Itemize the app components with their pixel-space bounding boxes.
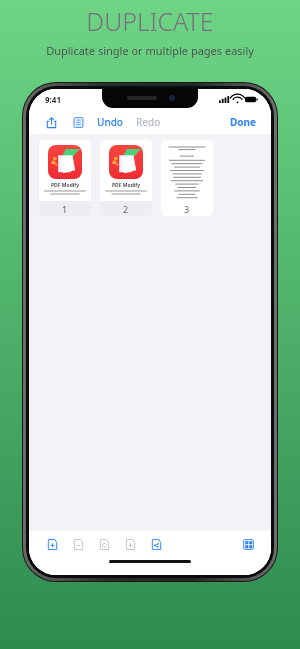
button[interactable]: 3 (161, 140, 213, 216)
button[interactable]: Delete page (68, 534, 88, 554)
staticText: Redo (136, 115, 161, 129)
button[interactable]: Done (228, 113, 259, 131)
button[interactable]: PDF Modify (100, 140, 152, 216)
button[interactable]: Rotate page (94, 534, 114, 554)
button[interactable]: Duplicate page (120, 534, 140, 554)
button[interactable]: Pages (68, 112, 88, 132)
button[interactable]: Grid view (238, 534, 258, 554)
button[interactable]: Share page (146, 534, 166, 554)
staticText: PDF Modify (51, 182, 80, 189)
staticText: Undo (97, 115, 123, 129)
staticText: Duplicate single or multiple pages easil… (46, 43, 254, 58)
button[interactable]: Undo (95, 113, 125, 131)
staticText: 1 (62, 203, 68, 215)
staticText: DUPLICATE (86, 4, 214, 38)
button[interactable]: Redo (134, 113, 163, 131)
button[interactable]: Add page (42, 534, 62, 554)
staticText: PDF Modify (112, 182, 141, 189)
staticText: Done (230, 115, 257, 129)
button[interactable]: PDF Modify (39, 140, 91, 216)
staticText: 3 (184, 203, 190, 215)
staticText: 2 (123, 203, 129, 215)
staticText: 9:41 (45, 94, 61, 105)
button[interactable]: Share (41, 112, 61, 132)
